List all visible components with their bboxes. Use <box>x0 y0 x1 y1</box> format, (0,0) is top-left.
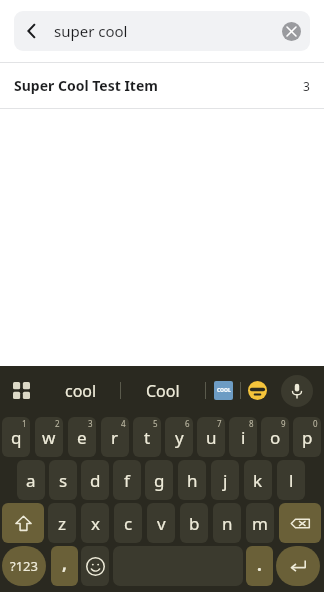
staticText: k <box>253 469 263 492</box>
button[interactable]: Clear search <box>274 14 308 48</box>
staticText: z <box>58 512 66 535</box>
button[interactable]: z <box>48 503 76 543</box>
button[interactable]: y <box>165 417 193 457</box>
button[interactable]: t <box>133 417 161 457</box>
staticText: COOL <box>217 387 231 394</box>
staticText: 9 <box>281 418 286 429</box>
button[interactable]: Emoji <box>81 546 109 586</box>
staticText: t <box>144 426 151 449</box>
button[interactable]: Super Cool Test Item <box>0 63 324 108</box>
button[interactable]: cool <box>42 366 120 415</box>
staticText: q <box>11 426 22 449</box>
button[interactable]: w <box>35 417 63 457</box>
staticText: cool <box>65 380 97 402</box>
button[interactable]: n <box>213 503 241 543</box>
staticText: , <box>62 552 67 575</box>
button[interactable]: q <box>2 417 30 457</box>
staticText: ?123 <box>10 557 38 575</box>
button[interactable]: r <box>101 417 129 457</box>
button[interactable]: j <box>211 460 239 500</box>
staticText: f <box>124 469 130 492</box>
staticText: 1 <box>22 418 27 429</box>
button[interactable]: ?123 <box>2 546 46 586</box>
button[interactable]: . <box>246 546 273 586</box>
staticText: a <box>26 469 36 492</box>
staticText: 2 <box>55 418 60 429</box>
button[interactable]: o <box>261 417 289 457</box>
staticText: 4 <box>121 418 126 429</box>
staticText: 7 <box>217 418 222 429</box>
button[interactable]: k <box>244 460 272 500</box>
button[interactable]: Emoji <box>241 366 274 415</box>
button[interactable]: Voice input <box>274 366 320 415</box>
staticText: super cool <box>54 21 128 41</box>
staticText: Cool <box>146 380 180 402</box>
button[interactable]: s <box>49 460 77 500</box>
staticText: u <box>206 426 217 449</box>
staticText: l <box>289 469 294 492</box>
button[interactable]: x <box>81 503 109 543</box>
button[interactable]: Back <box>14 13 50 49</box>
staticText: o <box>270 426 281 449</box>
staticText: 8 <box>249 418 254 429</box>
staticText: r <box>111 426 119 449</box>
staticText: . <box>257 553 262 576</box>
button[interactable]: a <box>17 460 45 500</box>
staticText: 3 <box>303 78 310 94</box>
button[interactable]: g <box>145 460 173 500</box>
staticText: b <box>189 512 200 535</box>
button[interactable]: m <box>246 503 274 543</box>
button[interactable]: p <box>293 417 321 457</box>
button[interactable]: u <box>197 417 225 457</box>
button[interactable]: d <box>81 460 109 500</box>
staticText: 6 <box>185 418 190 429</box>
button[interactable]: , <box>51 546 78 586</box>
button[interactable]: Enter <box>276 546 320 586</box>
staticText: x <box>91 512 100 535</box>
button[interactable]: b <box>180 503 208 543</box>
staticText: 0 <box>313 418 318 429</box>
button[interactable]: Cool <box>121 366 205 415</box>
staticText: d <box>90 469 101 492</box>
button[interactable]: Backspace <box>279 503 321 543</box>
staticText: h <box>187 469 198 492</box>
button[interactable]: Toolbar <box>0 366 42 415</box>
button[interactable]: Shift <box>2 503 44 543</box>
staticText: j <box>223 469 228 492</box>
button[interactable]: e <box>68 417 96 457</box>
button[interactable]: f <box>113 460 141 500</box>
staticText: i <box>241 426 246 449</box>
button[interactable]: c <box>114 503 142 543</box>
button[interactable]: v <box>147 503 175 543</box>
staticText: n <box>222 512 233 535</box>
staticText: s <box>59 469 68 492</box>
staticText: v <box>157 512 166 535</box>
staticText: p <box>302 426 313 449</box>
staticText: e <box>77 426 87 449</box>
staticText: g <box>154 469 165 492</box>
button[interactable]: i <box>229 417 257 457</box>
staticText: Super Cool Test Item <box>14 76 158 95</box>
staticText: w <box>42 426 56 449</box>
staticText: 5 <box>153 418 158 429</box>
button[interactable]: Stickers <box>206 366 240 415</box>
staticText: 3 <box>88 418 93 429</box>
staticText: y <box>175 426 184 449</box>
staticText: c <box>124 512 133 535</box>
button[interactable]: h <box>178 460 206 500</box>
staticText: m <box>252 512 268 535</box>
button[interactable]: l <box>277 460 305 500</box>
